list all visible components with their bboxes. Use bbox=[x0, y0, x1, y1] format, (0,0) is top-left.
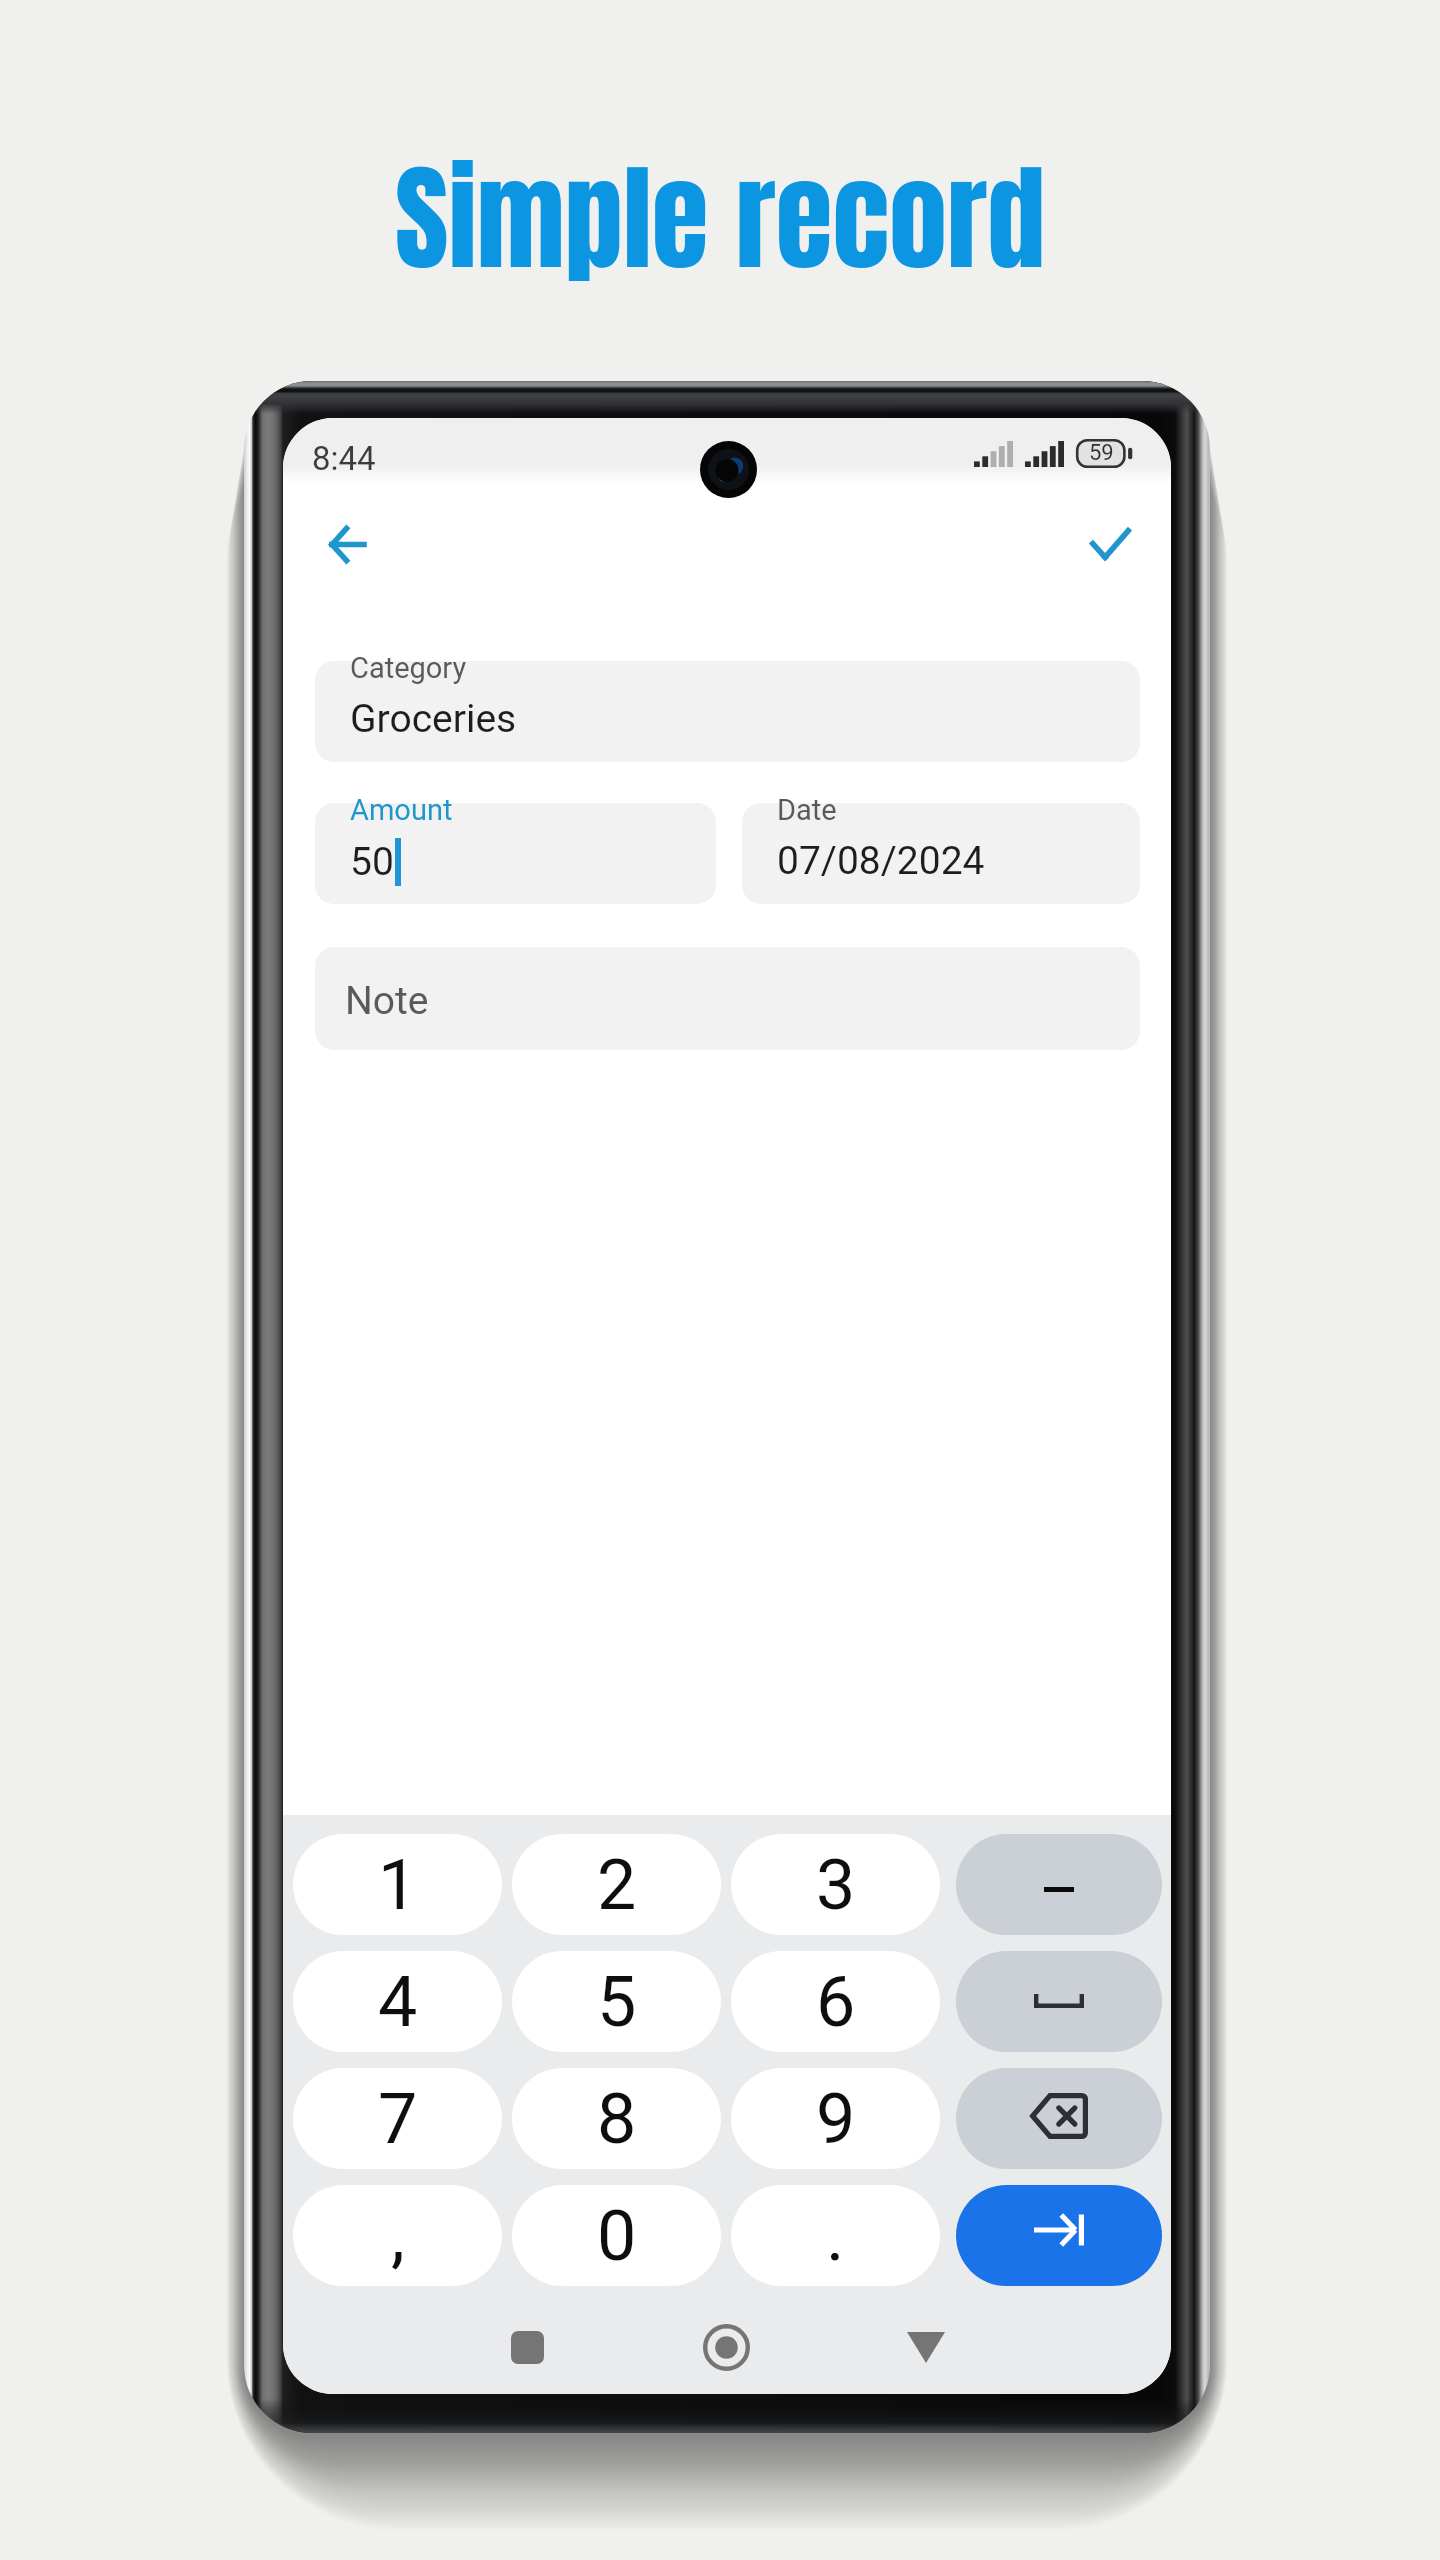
button[interactable]: 3 bbox=[731, 1834, 940, 1935]
button[interactable]: 7 bbox=[293, 2068, 502, 2169]
staticText: 5 bbox=[597, 1961, 637, 2043]
staticText: 1 bbox=[378, 1844, 418, 1926]
button[interactable]: . bbox=[731, 2185, 940, 2286]
button[interactable]: 0 bbox=[512, 2185, 721, 2286]
button[interactable]: 8 bbox=[512, 2068, 721, 2169]
staticText: 8 bbox=[597, 2078, 637, 2160]
staticText: 4 bbox=[378, 1961, 418, 2043]
button[interactable]: Note bbox=[315, 947, 1140, 1050]
button[interactable]: , bbox=[293, 2185, 502, 2286]
staticText: 7 bbox=[378, 2078, 418, 2160]
staticText: 07/08/2024 bbox=[777, 838, 985, 884]
button[interactable]: 4 bbox=[293, 1951, 502, 2052]
button[interactable]: 2 bbox=[512, 1834, 721, 1935]
staticText: Simple record bbox=[0, 131, 1440, 306]
button[interactable]: Next field bbox=[956, 2185, 1162, 2286]
staticText: 9 bbox=[816, 2078, 856, 2160]
button[interactable]: Space bbox=[956, 1951, 1162, 2052]
staticText: 6 bbox=[816, 1961, 856, 2043]
button[interactable]: Home bbox=[681, 2302, 771, 2392]
button[interactable]: Amount bbox=[315, 803, 716, 904]
staticText: Date bbox=[777, 793, 837, 827]
staticText: 0 bbox=[597, 2195, 637, 2277]
staticText: Category bbox=[350, 651, 467, 685]
staticText: Groceries bbox=[350, 696, 517, 742]
staticText: 3 bbox=[816, 1844, 856, 1926]
button[interactable]: Backspace bbox=[956, 2068, 1162, 2169]
staticText: Note bbox=[345, 978, 429, 1024]
staticText: . bbox=[826, 2195, 845, 2277]
staticText: 50 bbox=[350, 839, 394, 885]
button[interactable]: Category bbox=[315, 661, 1140, 762]
button[interactable]: Minus bbox=[956, 1834, 1162, 1935]
staticText: 2 bbox=[597, 1844, 637, 1926]
button[interactable]: 9 bbox=[731, 2068, 940, 2169]
button[interactable]: 5 bbox=[512, 1951, 721, 2052]
button[interactable]: Date bbox=[742, 803, 1140, 904]
button[interactable]: Save bbox=[1062, 495, 1158, 591]
button[interactable]: Hide keyboard bbox=[881, 2302, 971, 2392]
staticText: 8:44 bbox=[312, 439, 376, 478]
staticText: , bbox=[391, 2195, 405, 2277]
button[interactable]: Recent apps bbox=[482, 2302, 572, 2392]
button[interactable]: 6 bbox=[731, 1951, 940, 2052]
staticText: Amount bbox=[350, 793, 453, 827]
button[interactable]: 1 bbox=[293, 1834, 502, 1935]
staticText: 59 bbox=[1089, 440, 1114, 466]
button[interactable]: Back bbox=[299, 495, 395, 591]
